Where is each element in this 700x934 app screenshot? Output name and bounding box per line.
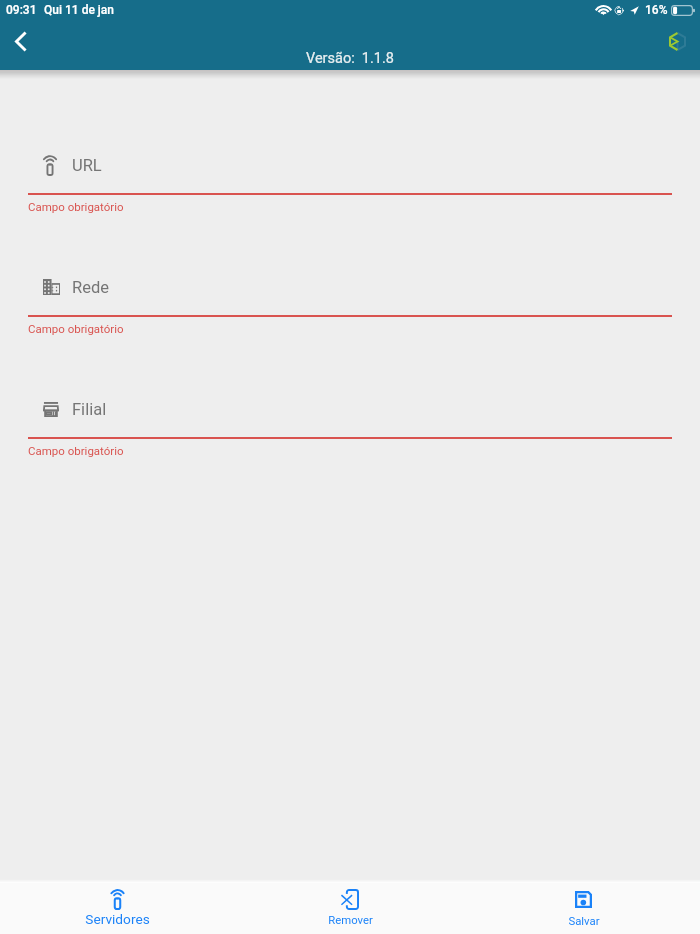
staticText: Qui 11 de jan (44, 3, 115, 17)
staticText: 16% (645, 3, 668, 17)
staticText: Versão: 1.1.8 (306, 50, 394, 67)
staticText: Campo obrigatório (28, 444, 124, 457)
button[interactable]: Servidores (0, 883, 234, 934)
staticText: Rede (72, 278, 109, 297)
button[interactable]: Back (0, 18, 40, 64)
staticText: Campo obrigatório (28, 200, 124, 213)
staticText: Filial (72, 400, 107, 419)
button[interactable]: Salvar (467, 883, 700, 934)
staticText: 09:31 (6, 3, 37, 17)
button[interactable]: Remover (234, 883, 467, 934)
staticText: Salvar (568, 914, 600, 927)
staticText: Remover (328, 914, 373, 927)
other: App logo (670, 33, 685, 50)
staticText: URL (72, 156, 102, 175)
staticText: Servidores (85, 911, 150, 927)
staticText: Campo obrigatório (28, 322, 124, 335)
